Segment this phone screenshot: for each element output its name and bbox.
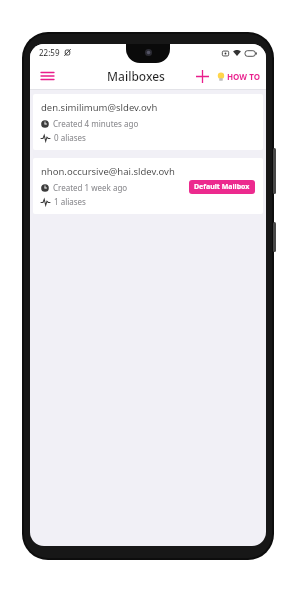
staticText: den.similimum@sldev.ovh <box>41 101 158 114</box>
staticText: nhon.occursive@hai.sldev.ovh <box>41 165 175 178</box>
button[interactable]: nhon.occursive@hai.sldev.ovh <box>33 158 263 214</box>
staticText: Default Mailbox <box>194 182 250 192</box>
staticText: HOW TO <box>227 71 260 82</box>
button[interactable]: HOW TO <box>215 67 262 86</box>
button[interactable]: Add mailbox <box>191 65 213 87</box>
staticText: 0 aliases <box>54 132 86 143</box>
staticText: Created 4 minutes ago <box>53 118 139 129</box>
button[interactable]: Open navigation menu <box>36 65 58 87</box>
staticText: 22:59 <box>39 47 60 58</box>
staticText: 1 aliases <box>54 196 86 207</box>
staticText: Mailboxes <box>107 68 165 84</box>
button[interactable]: den.similimum@sldev.ovh <box>33 94 263 150</box>
staticText: Created 1 week ago <box>53 182 128 193</box>
